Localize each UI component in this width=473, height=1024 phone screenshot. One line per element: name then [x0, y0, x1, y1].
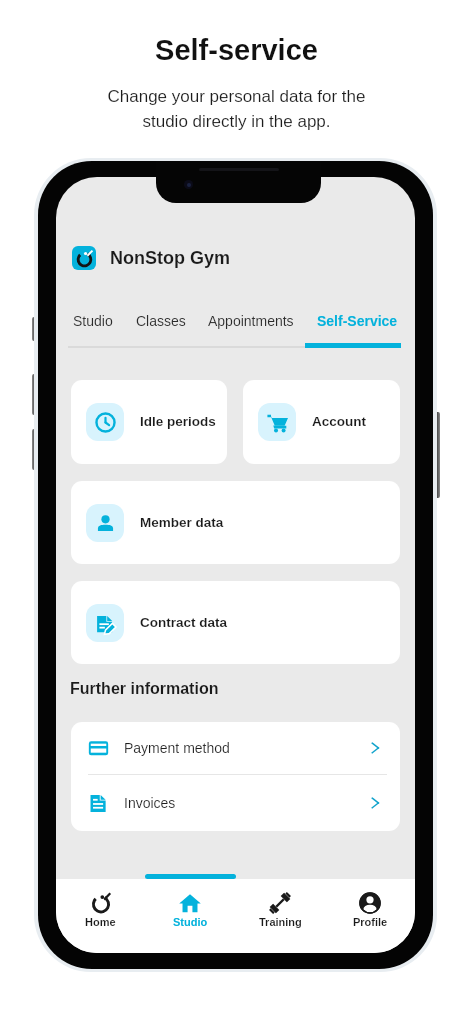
staticText: Profile: [353, 916, 388, 928]
staticText: Member data: [140, 515, 224, 530]
staticText: Appointments: [208, 313, 294, 329]
button[interactable]: Invoices: [71, 775, 400, 831]
button[interactable]: Idle periods: [71, 380, 227, 464]
staticText: Home: [85, 916, 116, 928]
staticText: Studio: [173, 916, 208, 928]
staticText: Self-Service: [317, 313, 398, 329]
button[interactable]: Profile: [325, 879, 415, 928]
staticText: Invoices: [124, 795, 176, 811]
button[interactable]: Studio: [145, 879, 235, 928]
button[interactable]: Payment method: [71, 722, 400, 774]
button[interactable]: Appointments: [208, 313, 294, 348]
button[interactable]: Member data: [71, 481, 400, 564]
staticText: NonStop Gym: [110, 248, 230, 268]
button[interactable]: Home: [56, 879, 145, 928]
staticText: Account: [312, 414, 366, 429]
staticText: Further information: [70, 680, 219, 698]
button[interactable]: Training: [235, 879, 325, 928]
button[interactable]: Account: [243, 380, 400, 464]
staticText: Contract data: [140, 615, 228, 630]
staticText: Classes: [136, 313, 186, 329]
button[interactable]: Self-Service: [317, 313, 398, 348]
staticText: Payment method: [124, 740, 230, 756]
button[interactable]: Contract data: [71, 581, 400, 664]
staticText: Training: [259, 916, 302, 928]
staticText: Idle periods: [140, 414, 216, 429]
staticText: Studio: [73, 313, 113, 329]
button[interactable]: Studio: [73, 313, 113, 348]
staticText: Self-service: [155, 34, 318, 66]
button[interactable]: Classes: [136, 313, 186, 348]
staticText: Change your personal data for the studio…: [107, 87, 366, 131]
